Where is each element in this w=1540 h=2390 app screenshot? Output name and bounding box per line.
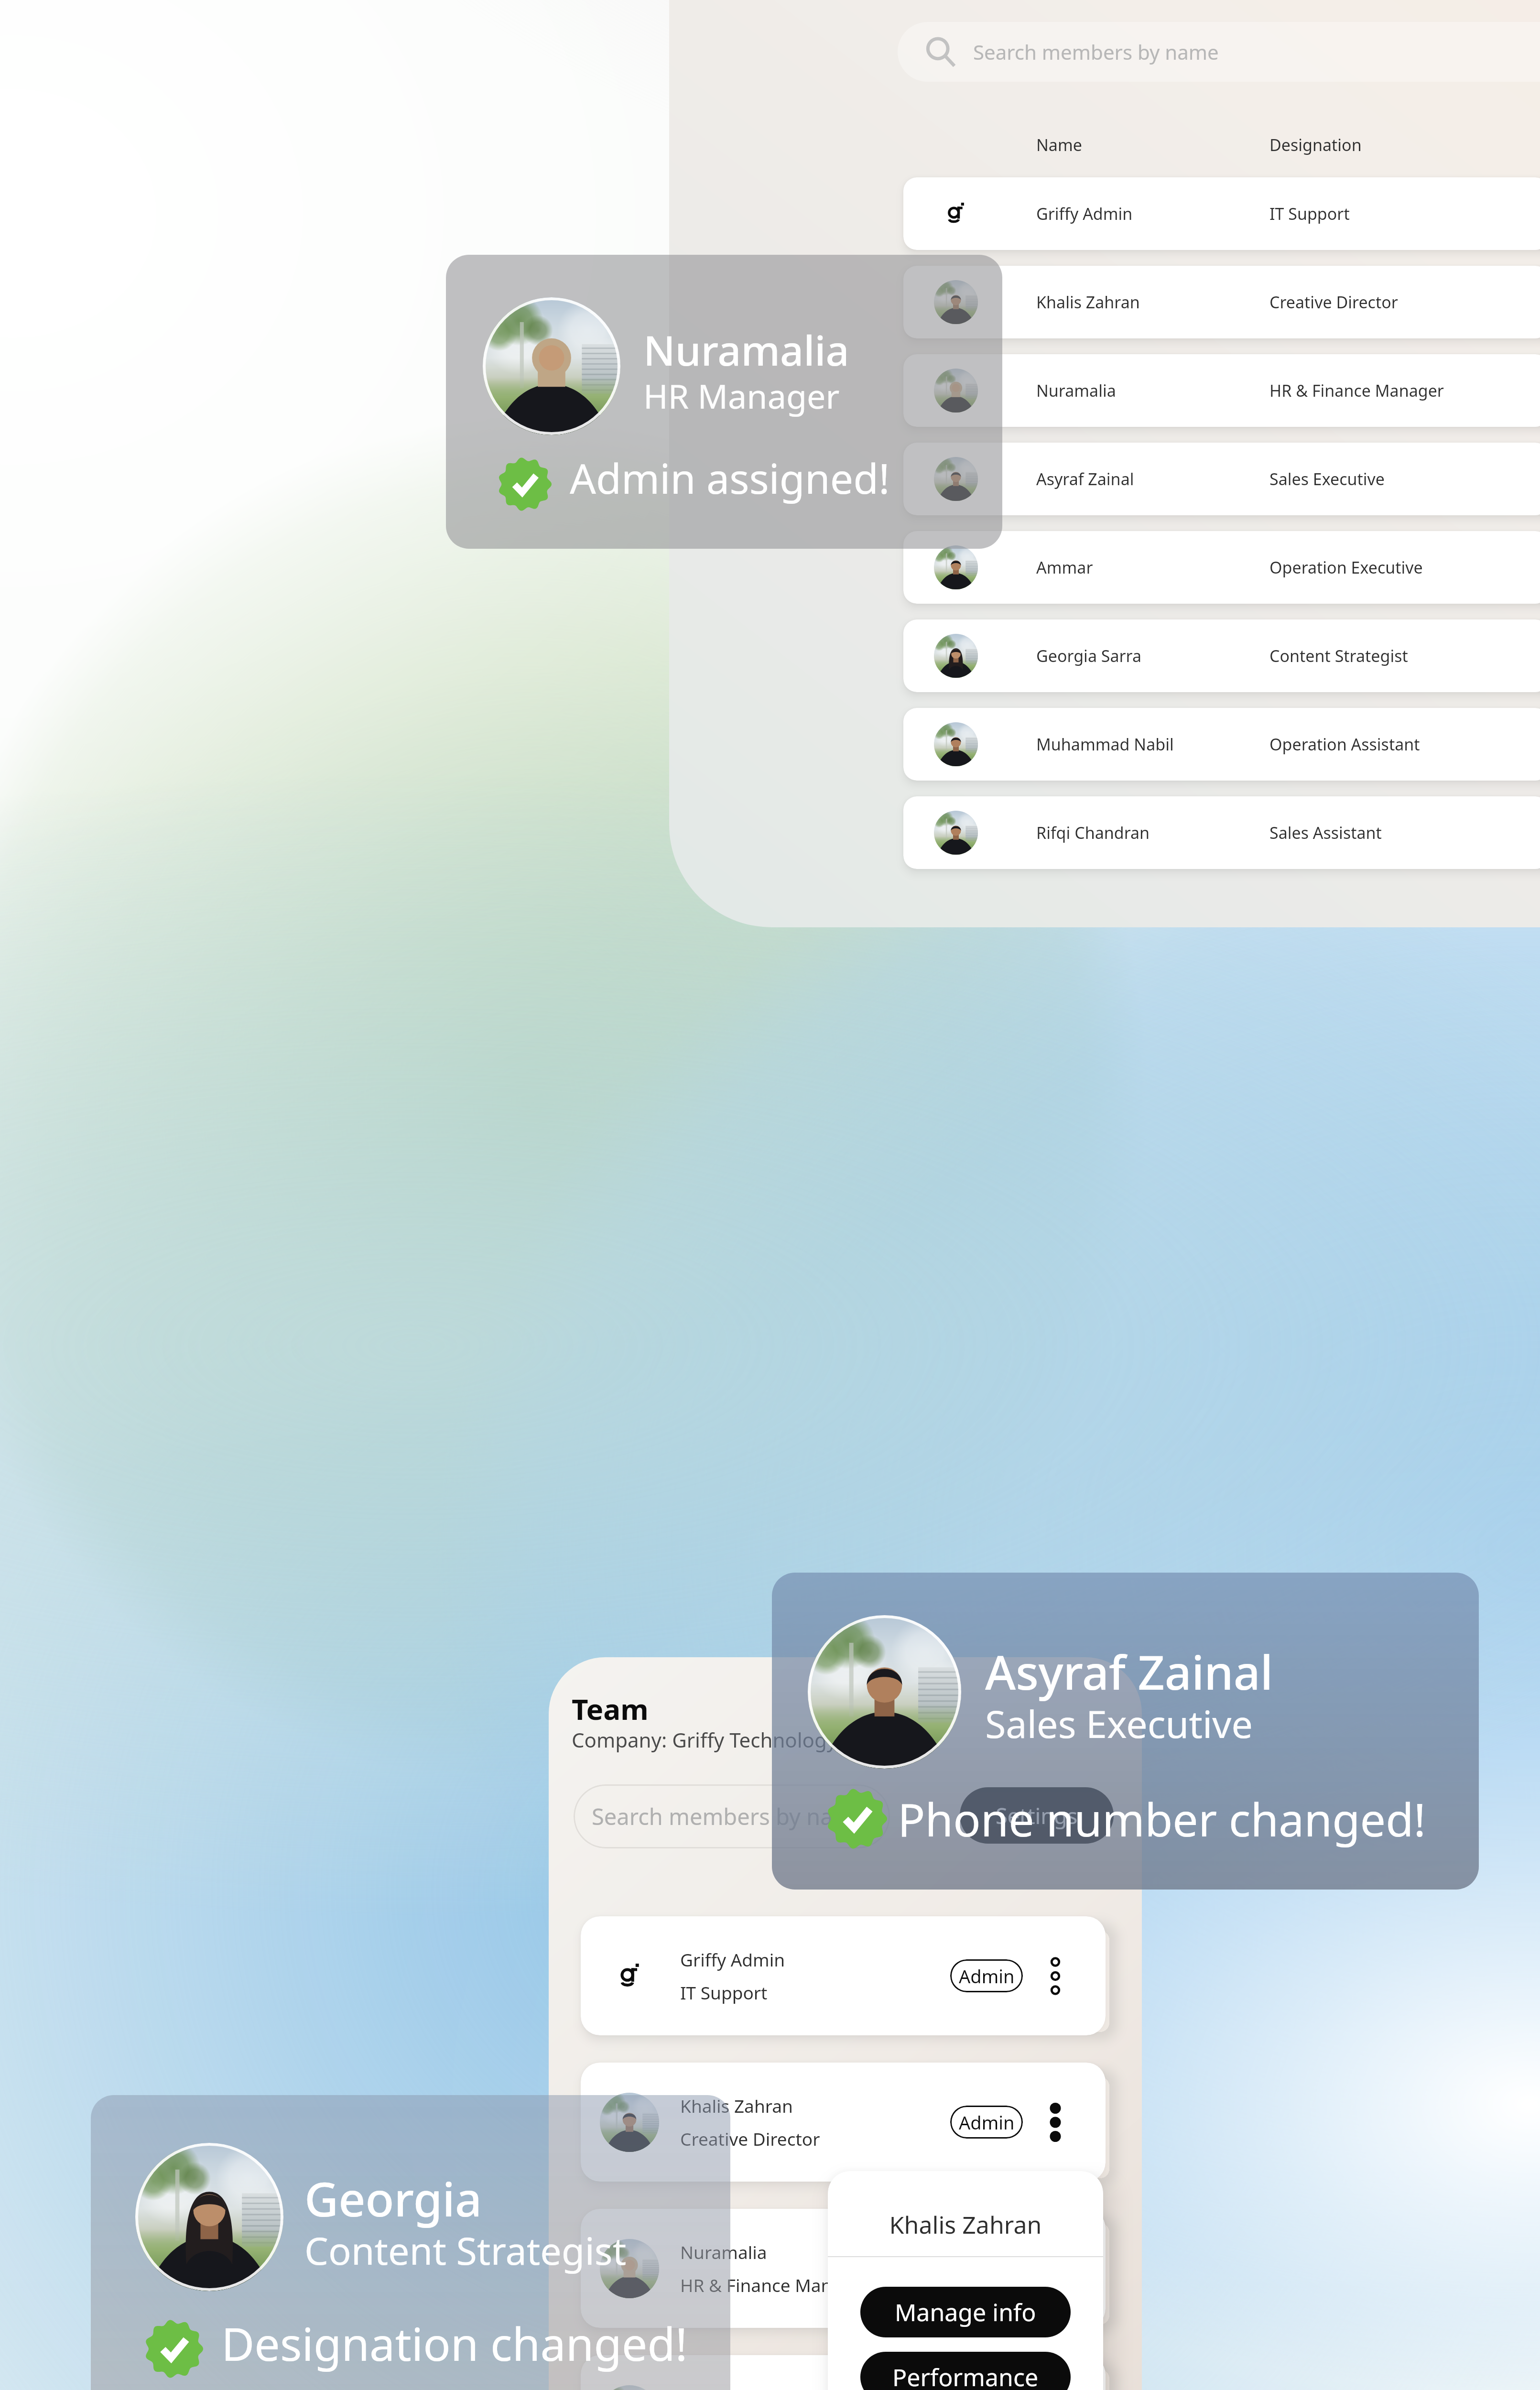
staticText: Nuramalia <box>643 322 849 378</box>
button[interactable]: More options <box>1029 1950 1082 2002</box>
staticText: Sales Executive <box>985 1698 1253 1749</box>
staticText: Sales Executive <box>1269 468 1385 490</box>
button[interactable]: Nuramalia <box>903 354 1540 427</box>
button[interactable]: Search members by name <box>898 22 1540 82</box>
staticText: Khalis Zahran <box>1036 291 1140 313</box>
button[interactable]: Admin <box>950 2252 1023 2285</box>
button[interactable]: Muhammad Nabil <box>903 708 1540 781</box>
staticText: Rifqi Chandran <box>1036 822 1150 844</box>
staticText: HR & Finance Manager <box>1269 380 1444 402</box>
staticText: Sales Assistant <box>1269 822 1382 844</box>
staticText: IT Support <box>680 1980 768 2004</box>
button[interactable]: Khalis Zahran <box>581 2063 1106 2182</box>
button[interactable]: Asyraf Zainal <box>903 443 1540 515</box>
staticText: Asyraf Zainal <box>680 2386 787 2390</box>
staticText: Admin assigned! <box>570 450 890 506</box>
staticText: Griffy Admin <box>1036 203 1133 225</box>
staticText: Asyraf Zainal <box>985 1640 1273 1703</box>
staticText: Search members by name <box>592 1801 867 1832</box>
staticText: IT Support <box>1269 203 1350 225</box>
staticText: Admin <box>959 1964 1015 1988</box>
button[interactable]: More options <box>1029 2389 1082 2390</box>
staticText: Georgia <box>304 2166 482 2230</box>
staticText: Designation changed! <box>221 2312 688 2374</box>
button[interactable]: Griffy Admin <box>581 1916 1106 2035</box>
staticText: Admin <box>959 2256 1015 2281</box>
staticText: Nuramalia <box>680 2240 767 2264</box>
staticText: Phone number changed! <box>898 1788 1426 1849</box>
staticText: HR & Finance Manager <box>680 2273 870 2297</box>
staticText: Asyraf Zainal <box>1036 468 1134 490</box>
staticText: Search members by name <box>973 38 1219 65</box>
staticText: Khalis Zahran <box>828 2208 1103 2241</box>
staticText: Creative Director <box>1269 291 1398 313</box>
button[interactable]: More options <box>1029 2096 1082 2149</box>
button[interactable]: Search members by name <box>574 1784 890 1848</box>
staticText: Company: Griffy Technology <box>572 1726 837 1753</box>
staticText: Performance <box>892 2361 1039 2390</box>
staticText: HR Manager <box>643 373 840 418</box>
staticText: Team <box>572 1689 649 1728</box>
staticText: Nuramalia <box>1036 380 1116 402</box>
staticText: Name <box>1036 134 1082 156</box>
staticText: Manage info <box>895 2296 1036 2328</box>
button[interactable]: More options <box>1029 2242 1082 2295</box>
button[interactable]: Asyraf Zainal <box>581 2355 1106 2390</box>
staticText: Operation Executive <box>1269 556 1423 578</box>
button[interactable]: Georgia <box>91 2095 730 2390</box>
staticText: Griffy Admin <box>680 1947 785 1971</box>
button[interactable]: Asyraf Zainal <box>772 1573 1479 1890</box>
button[interactable]: Rifqi Chandran <box>903 796 1540 869</box>
staticText: Georgia Sarra <box>1036 645 1142 667</box>
staticText: Designation <box>1269 134 1362 156</box>
button[interactable]: Griffy Admin <box>903 177 1540 250</box>
staticText: Settings <box>996 1801 1078 1830</box>
staticText: Khalis Zahran <box>680 2094 793 2118</box>
staticText: Creative Director <box>680 2127 820 2151</box>
staticText: Muhammad Nabil <box>1036 733 1174 755</box>
button[interactable]: Georgia Sarra <box>903 619 1540 692</box>
staticText: Content Strategist <box>1269 645 1408 667</box>
button[interactable]: Nuramalia <box>446 255 1002 549</box>
button[interactable]: Ammar <box>903 531 1540 604</box>
button[interactable]: Nuramalia <box>581 2209 1106 2328</box>
staticText: Admin <box>959 2110 1015 2135</box>
button[interactable]: Performance <box>860 2352 1071 2390</box>
button[interactable]: Admin <box>950 2106 1023 2139</box>
button[interactable]: Manage info <box>860 2287 1071 2337</box>
staticText: Ammar <box>1036 556 1093 578</box>
button[interactable]: Admin <box>950 1959 1023 1992</box>
button[interactable]: Settings <box>960 1787 1114 1844</box>
button[interactable]: Khalis Zahran <box>903 266 1540 338</box>
staticText: Content Strategist <box>304 2225 627 2276</box>
staticText: Operation Assistant <box>1269 733 1420 755</box>
